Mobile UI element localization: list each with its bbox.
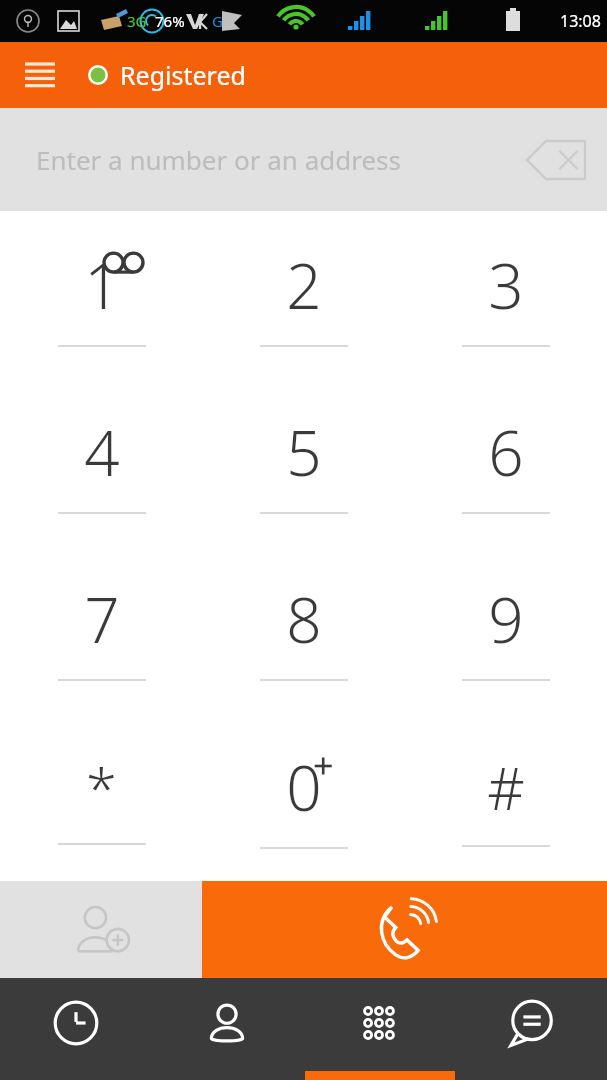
button[interactable]: Open navigation menu [16,51,64,99]
staticText: G [212,11,223,31]
staticText: 4 [84,410,120,494]
staticText: 76% [155,11,185,31]
button[interactable]: 6 [405,378,607,545]
button[interactable]: 8 [203,545,405,713]
button[interactable]: 7 [0,545,203,713]
button[interactable]: Add contact [0,881,202,978]
staticText: 7 [84,577,120,661]
button[interactable]: Contacts [151,978,303,1080]
staticText: 6 [488,410,524,494]
button[interactable]: Registered [88,58,246,92]
button[interactable]: # [405,713,607,881]
button[interactable]: Backspace [517,128,595,192]
staticText: 0 [286,745,322,829]
staticText: 3G [127,11,147,31]
staticText: 9 [488,577,524,661]
button[interactable]: Recent calls [0,978,151,1080]
staticText: # [487,748,525,827]
staticText: 13:08 [560,10,601,32]
button[interactable]: Keypad [303,978,455,1080]
staticText: 1 [84,243,120,327]
button[interactable]: 5 [203,378,405,545]
button[interactable]: 3 [405,211,607,378]
button[interactable]: Call [202,881,607,978]
button[interactable]: 9 [405,545,607,713]
button[interactable]: * [0,713,203,881]
staticText: Registered [120,58,246,92]
staticText: 2 [286,243,322,327]
staticText: 5 [286,410,322,494]
button[interactable]: 1 [0,211,203,378]
button[interactable]: Messages [455,978,607,1080]
button[interactable]: 0 [203,713,405,881]
staticText: * [86,749,117,825]
staticText: Enter a number or an address [36,142,402,177]
staticText: 8 [286,577,322,661]
button[interactable]: 4 [0,378,203,545]
staticText: 3 [488,243,524,327]
button[interactable]: 2 [203,211,405,378]
